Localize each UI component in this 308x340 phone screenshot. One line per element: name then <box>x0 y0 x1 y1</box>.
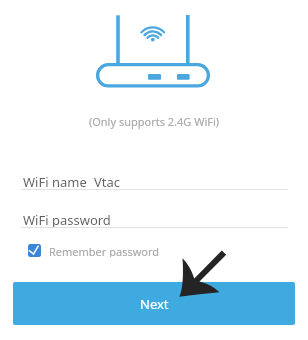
button[interactable]: Next <box>13 282 295 325</box>
staticText: (Only supports 2.4G WiFi) <box>0 114 308 129</box>
button[interactable]: WiFi password <box>21 209 288 229</box>
button[interactable]: WiFi name <box>21 171 288 191</box>
staticText: WiFi name <box>23 173 87 191</box>
staticText: WiFi password <box>23 211 111 229</box>
other: WiFi router <box>92 8 216 94</box>
staticText: Vtac <box>94 173 121 191</box>
staticText: Next <box>140 295 169 313</box>
button[interactable]: Remember password <box>28 244 160 257</box>
staticText: Remember password <box>49 244 160 257</box>
